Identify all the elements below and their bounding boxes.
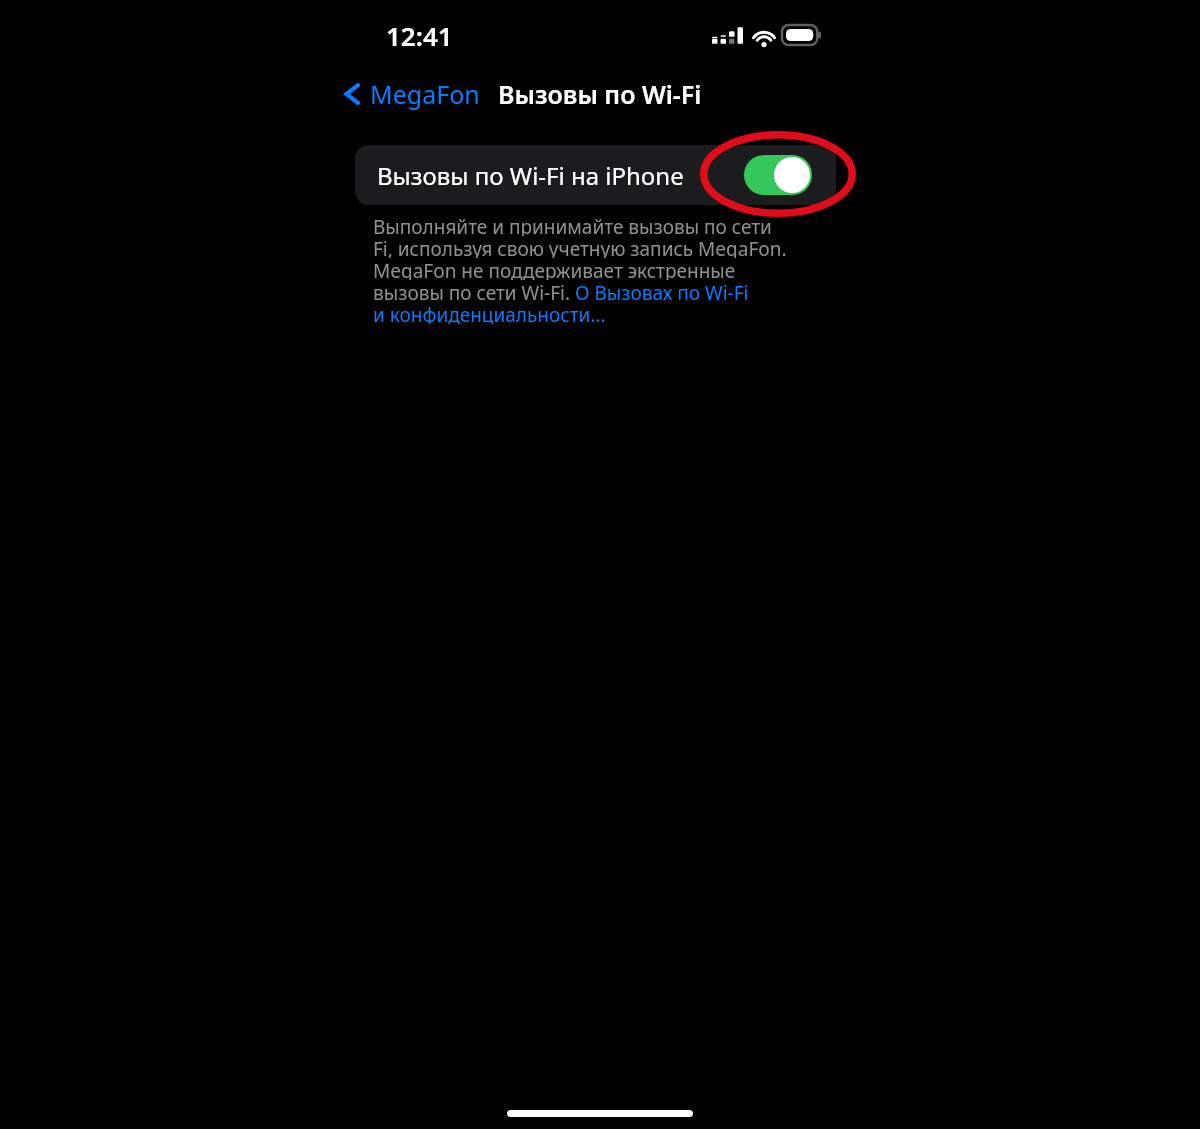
staticText: вызовы по сети Wi-Fi. О Вызовах по Wi-Fi [373, 280, 749, 302]
staticText: MegaFon не поддерживает экстренные [373, 258, 736, 280]
staticText: и конфиденциальности... [373, 302, 606, 324]
button[interactable]: Выполняйте и принимайте вызовы по сети W… [373, 214, 803, 324]
staticText: Выполняйте и принимайте вызовы по сети W… [373, 214, 803, 236]
button[interactable]: Вызовы по Wi-Fi на iPhone toggle, on [744, 155, 812, 195]
staticText: Fi, используя свою учетную запись MegaFo… [373, 236, 787, 258]
staticText: Вызовы по Wi-Fi на iPhone [377, 159, 684, 192]
staticText: MegaFon [370, 77, 480, 111]
button[interactable]: MegaFon [338, 75, 484, 113]
staticText: Вызовы по Wi-Fi [498, 77, 702, 111]
staticText: 12:41 [386, 18, 453, 52]
button[interactable]: Вызовы по Wi-Fi на iPhone [355, 145, 836, 205]
